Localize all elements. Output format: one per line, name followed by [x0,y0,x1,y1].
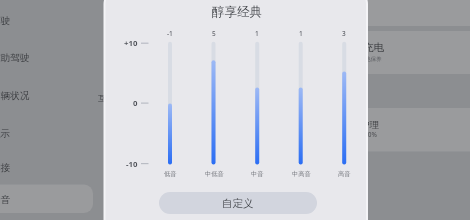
staticText: 5 [212,29,216,38]
staticText: 醇享经典 [212,4,262,20]
button[interactable]: 车辆状况 [0,87,89,105]
staticText: 中音 [251,170,264,178]
staticText: 驾驶 [0,15,11,27]
button[interactable]: 辅助驾驶 [0,49,89,67]
staticText: 高音 [338,170,351,178]
button[interactable]: 自定义 [159,192,317,214]
staticText: 池保养 [365,56,382,63]
staticText: 充电 [363,41,384,54]
staticText: 1 [255,29,259,38]
staticText: 低音 [164,170,177,178]
staticText: 连接 [0,162,11,174]
button[interactable]: 连接 [0,159,89,177]
button[interactable]: 驾驶 [0,12,89,30]
staticText: -10 [126,159,138,170]
button[interactable]: 显示 [0,125,89,143]
staticText: 中低音 [205,170,224,178]
staticText: 中高音 [292,170,311,178]
staticText: 80% [364,130,377,139]
staticText: 车辆状况 [0,90,30,102]
staticText: 互联 [98,93,115,103]
staticText: 声音 [0,194,11,206]
staticText: 自定义 [222,197,254,210]
staticText: -1 [167,29,173,38]
staticText: 显示 [0,128,11,140]
staticText: 护理 [360,119,379,131]
staticText: +10 [124,38,138,49]
staticText: 0 [133,98,138,109]
button[interactable]: 声音 [0,191,89,209]
staticText: 1 [299,29,303,38]
staticText: 辅助驾驶 [0,52,30,64]
staticText: 3 [342,29,346,38]
